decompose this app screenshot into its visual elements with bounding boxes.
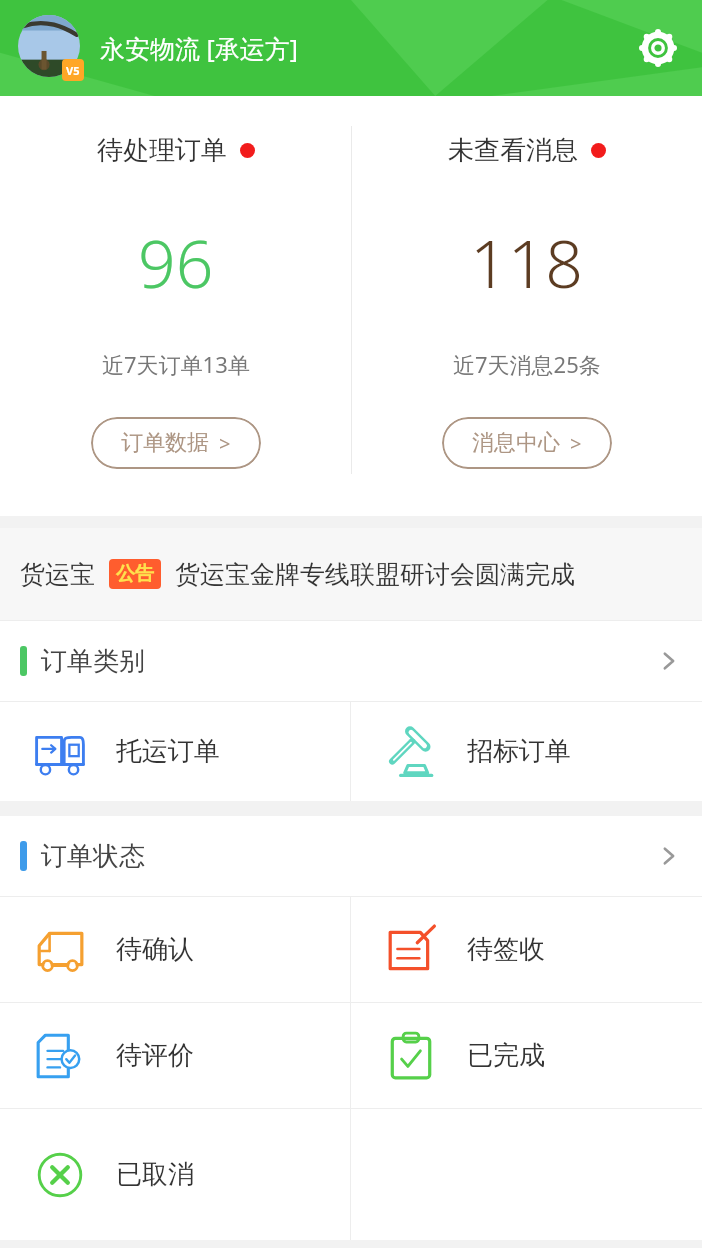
button[interactable]: 待评价 [0,1003,350,1108]
button[interactable]: 订单数据 [91,417,261,469]
staticText: 订单类别 [41,645,145,678]
staticText: 已完成 [467,1039,545,1072]
staticText: 118 [470,217,584,307]
button[interactable]: 待签收 [351,897,702,1002]
button[interactable]: 已取消 [0,1109,350,1240]
staticText: 货运宝金牌专线联盟研讨会圆满完成 [175,559,575,590]
staticText: 近7天消息25条 [453,349,601,379]
button[interactable]: Settings [632,22,684,74]
button[interactable]: 消息中心 [442,417,612,469]
button[interactable]: 招标订单 [351,702,702,801]
staticText: 公告 [116,562,154,586]
staticText: 订单状态 [41,840,145,873]
staticText: > [219,430,231,457]
staticText: 托运订单 [116,735,220,768]
staticText: 已取消 [116,1158,194,1191]
staticText: 近7天订单13单 [102,349,250,379]
staticText: 待确认 [116,933,194,966]
staticText: 未查看消息 [448,134,578,167]
button[interactable]: 待确认 [0,897,350,1002]
button[interactable]: 订单状态 [0,816,702,896]
staticText: 订单数据 [121,429,209,457]
button[interactable]: 货运宝 [0,528,702,620]
staticText: 96 [138,217,214,307]
staticText: > [570,430,582,457]
staticText: 待处理订单 [97,134,227,167]
button[interactable]: 已完成 [351,1003,702,1108]
staticText: 待评价 [116,1039,194,1072]
staticText: 消息中心 [472,429,560,457]
staticText: 招标订单 [467,735,571,768]
button[interactable]: 托运订单 [0,702,350,801]
staticText: 待签收 [467,933,545,966]
staticText: V5 [66,63,80,78]
staticText: 永安物流 [承运方] [100,31,298,65]
staticText: 货运宝 [20,559,95,590]
button[interactable]: 订单类别 [0,621,702,701]
